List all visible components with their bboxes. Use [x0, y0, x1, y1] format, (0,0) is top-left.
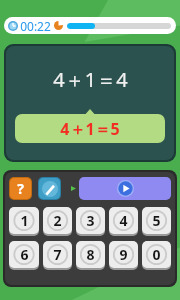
staticText: 3	[86, 211, 95, 230]
staticText: 00:22	[20, 18, 51, 34]
staticText: 7	[53, 245, 62, 264]
button[interactable]: 1	[9, 207, 39, 234]
staticText: 9	[119, 245, 128, 264]
button[interactable]: Hint	[10, 178, 31, 199]
button[interactable]: 4	[109, 207, 138, 234]
button[interactable]: 5	[142, 207, 171, 234]
button[interactable]: 6	[9, 241, 39, 268]
staticText: 4＋1＝5	[60, 118, 120, 140]
staticText: 8	[86, 245, 95, 264]
staticText: 5	[152, 211, 161, 230]
button[interactable]: 2	[43, 207, 72, 234]
button[interactable]: 8	[76, 241, 105, 268]
button[interactable]: 3	[76, 207, 105, 234]
staticText: 1	[20, 211, 29, 230]
button[interactable]: Play	[79, 177, 171, 200]
staticText: 4＋1＝4	[53, 66, 128, 93]
button[interactable]: 7	[43, 241, 72, 268]
button[interactable]: 9	[109, 241, 138, 268]
staticText: 4	[119, 211, 128, 230]
button[interactable]: Draw	[39, 178, 60, 199]
staticText: ?	[17, 179, 24, 198]
staticText: 2	[53, 211, 62, 230]
button[interactable]: 0	[142, 241, 171, 268]
staticText: 0	[152, 245, 161, 264]
staticText: 6	[20, 245, 29, 264]
